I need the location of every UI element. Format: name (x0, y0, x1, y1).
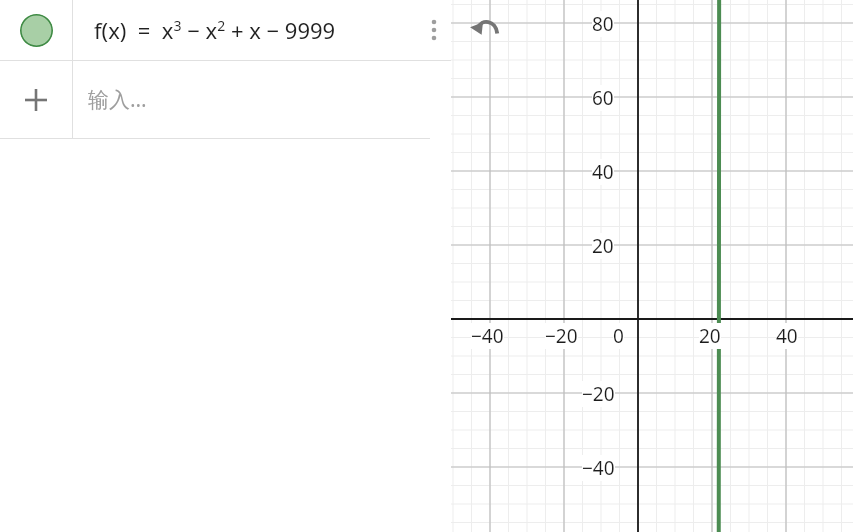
staticText: 60 (592, 85, 614, 111)
staticText: 输入… (88, 85, 147, 114)
staticText: 40 (592, 159, 614, 185)
staticText: 0 (613, 323, 624, 349)
button[interactable]: Toggle graph visibility (0, 0, 72, 60)
staticText: 40 (776, 323, 798, 349)
staticText: 20 (699, 323, 721, 349)
staticText: −20 (545, 323, 578, 349)
staticText: −20 (582, 381, 615, 407)
staticText: 20 (592, 233, 614, 259)
staticText: −40 (471, 323, 504, 349)
staticText: −40 (582, 455, 615, 481)
staticText: 80 (592, 11, 614, 37)
button[interactable]: Add expression (0, 61, 451, 138)
button[interactable]: More options (417, 0, 451, 60)
button[interactable]: Toggle graph visibility (0, 0, 451, 60)
button[interactable]: Undo (461, 4, 509, 52)
button[interactable]: Add expression (0, 61, 72, 138)
staticText: f(x) = x3 − x2 + x − 9999 (94, 15, 336, 45)
